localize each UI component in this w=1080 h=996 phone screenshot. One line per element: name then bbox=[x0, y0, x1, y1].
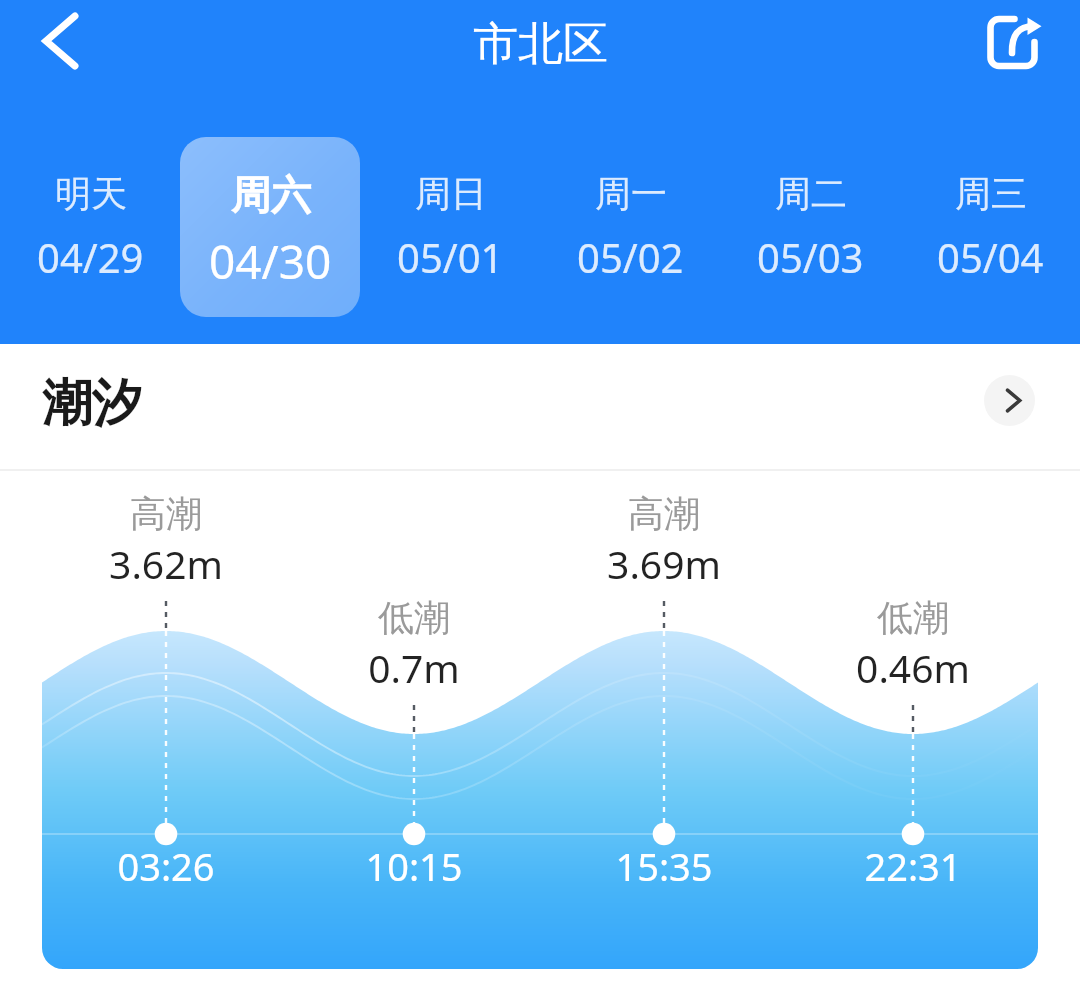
staticText: 05/02 bbox=[577, 230, 684, 284]
staticText: 10:15 bbox=[365, 840, 463, 892]
staticText: 潮汐 bbox=[42, 372, 142, 435]
button[interactable]: Back bbox=[8, 0, 102, 82]
staticText: 05/01 bbox=[397, 230, 504, 284]
button[interactable]: 周六 bbox=[180, 137, 360, 317]
button[interactable]: 潮汐 bbox=[0, 344, 1080, 469]
button[interactable]: 周二 bbox=[720, 137, 900, 317]
button[interactable]: 周三 bbox=[900, 137, 1080, 317]
staticText: 22:31 bbox=[864, 840, 962, 892]
staticText: 周日 bbox=[415, 171, 487, 216]
button[interactable]: 周日 bbox=[360, 137, 540, 317]
staticText: 低潮 bbox=[877, 595, 949, 640]
staticText: 15:35 bbox=[615, 840, 713, 892]
button[interactable]: Tide details bbox=[984, 375, 1035, 426]
staticText: 05/03 bbox=[757, 230, 864, 284]
staticText: 04/29 bbox=[37, 230, 144, 284]
staticText: 周二 bbox=[775, 171, 847, 216]
staticText: 3.62m bbox=[109, 537, 223, 590]
staticText: 高潮 bbox=[130, 491, 202, 536]
button[interactable]: 周一 bbox=[540, 137, 720, 317]
staticText: 市北区 bbox=[473, 16, 608, 73]
button[interactable]: 明天 bbox=[0, 137, 180, 317]
staticText: 明天 bbox=[55, 171, 127, 216]
staticText: 0.7m bbox=[368, 641, 460, 694]
staticText: 周三 bbox=[955, 171, 1027, 216]
staticText: 高潮 bbox=[628, 491, 700, 536]
staticText: 3.69m bbox=[607, 537, 721, 590]
staticText: 04/30 bbox=[209, 230, 332, 293]
staticText: 低潮 bbox=[378, 595, 450, 640]
staticText: 周一 bbox=[595, 171, 667, 216]
staticText: 05/04 bbox=[937, 230, 1044, 284]
staticText: 0.46m bbox=[856, 641, 970, 694]
staticText: 03:26 bbox=[117, 840, 215, 892]
staticText: 周六 bbox=[231, 170, 311, 220]
button[interactable]: Share bbox=[987, 7, 1057, 77]
